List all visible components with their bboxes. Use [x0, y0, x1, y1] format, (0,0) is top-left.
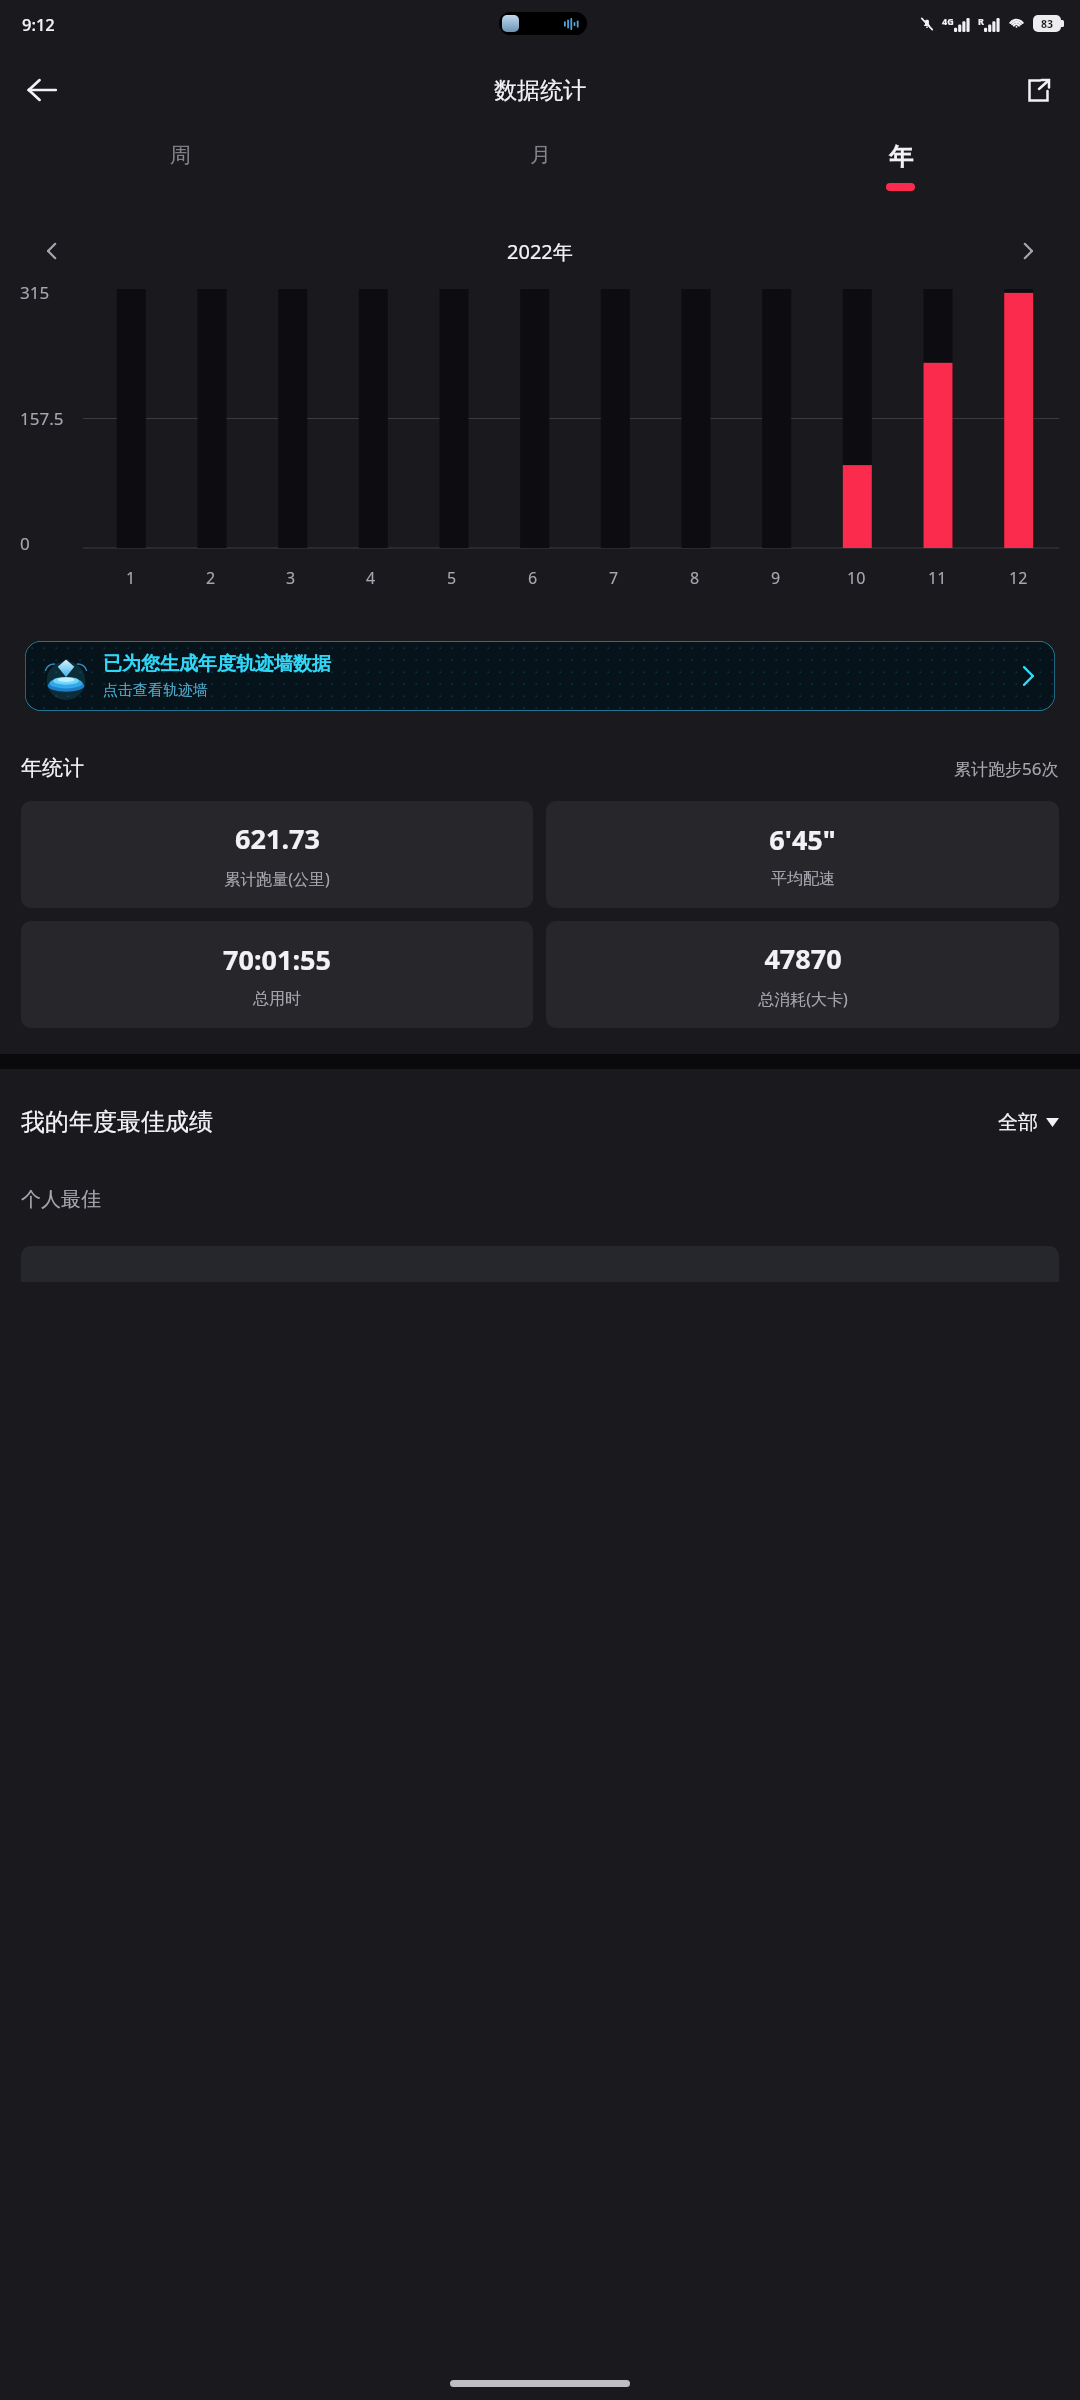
button[interactable]: 6'45" [546, 801, 1059, 908]
staticText: 3 [286, 567, 296, 589]
staticText: 12 [1009, 567, 1028, 589]
button[interactable]: Previous year [28, 227, 76, 275]
staticText: 70:01:55 [223, 941, 331, 978]
staticText: 1 [126, 567, 136, 589]
button[interactable]: Next year [1004, 227, 1052, 275]
staticText: 315 [20, 281, 50, 304]
staticText: 年统计 [21, 755, 84, 781]
staticText: 6'45" [769, 821, 836, 858]
staticText: 9 [771, 567, 781, 589]
staticText: 点击查看轨迹墙 [103, 681, 208, 700]
staticText: 数据统计 [494, 76, 586, 105]
staticText: 8 [690, 567, 700, 589]
button[interactable]: 621.73 [21, 801, 533, 908]
button[interactable]: 全部 [998, 1110, 1059, 1135]
staticText: 平均配速 [771, 869, 835, 889]
staticText: 4G [942, 15, 954, 27]
staticText: 年 [889, 142, 913, 172]
staticText: 已为您生成年度轨迹墙数据 [103, 652, 331, 676]
button[interactable]: Share [1010, 62, 1066, 118]
button[interactable]: 周 [0, 133, 360, 223]
staticText: 83 [1041, 17, 1054, 31]
staticText: 2022年 [507, 238, 573, 265]
staticText: 个人最佳 [21, 1187, 101, 1212]
staticText: 累计跑量(公里) [224, 868, 330, 890]
staticText: 月 [530, 142, 551, 168]
staticText: 5 [447, 567, 457, 589]
staticText: 11 [928, 567, 947, 589]
staticText: 157.5 [20, 407, 64, 430]
staticText: 621.73 [235, 820, 320, 857]
staticText: 10 [847, 567, 866, 589]
button[interactable]: 已为您生成年度轨迹墙数据 [25, 641, 1055, 711]
staticText: 6 [528, 567, 538, 589]
staticText: 累计跑步56次 [954, 757, 1059, 780]
button[interactable]: 年 [720, 133, 1080, 223]
staticText: 0 [20, 532, 30, 555]
staticText: 我的年度最佳成绩 [21, 1107, 213, 1137]
button[interactable]: 47870 [546, 921, 1059, 1028]
staticText: 全部 [998, 1110, 1038, 1135]
staticText: 7 [609, 567, 619, 589]
button[interactable]: Back [14, 62, 70, 118]
staticText: 47870 [764, 940, 842, 977]
staticText: 周 [170, 142, 191, 168]
staticText: R [978, 15, 984, 27]
staticText: 总用时 [253, 989, 301, 1009]
staticText: 2 [206, 567, 216, 589]
staticText: 4 [366, 567, 376, 589]
button[interactable]: 月 [360, 133, 720, 223]
staticText: 总消耗(大卡) [758, 988, 848, 1010]
staticText: 9:12 [22, 13, 55, 35]
button[interactable]: 70:01:55 [21, 921, 533, 1028]
